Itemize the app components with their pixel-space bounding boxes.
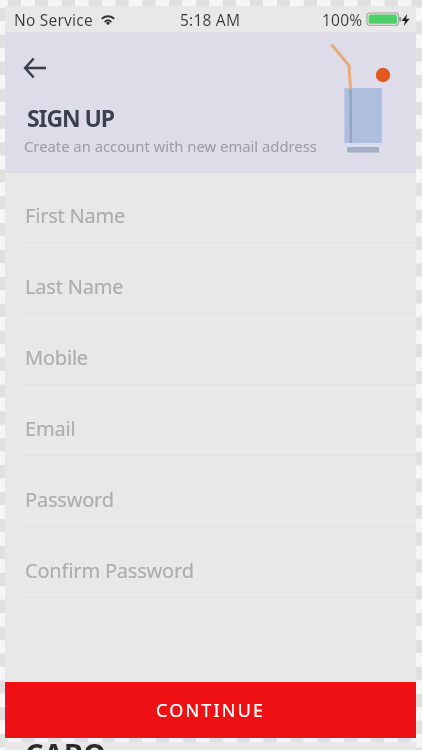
staticText: CONTINUE (156, 698, 266, 723)
button[interactable]: Back (13, 46, 57, 90)
button[interactable]: CONTINUE (5, 682, 416, 738)
staticText: First Name (25, 202, 126, 229)
staticText: Create an account with new email address (24, 136, 317, 156)
staticText: Last Name (25, 273, 124, 300)
button[interactable]: First Name (5, 173, 416, 243)
staticText: Mobile (25, 344, 88, 371)
button[interactable]: Last Name (5, 243, 416, 314)
staticText: 5:18 AM (180, 9, 241, 30)
button[interactable]: Email (5, 385, 416, 456)
staticText: No Service (14, 9, 93, 30)
staticText: Password (25, 486, 114, 513)
button[interactable]: Password (5, 456, 416, 527)
staticText: Confirm Password (25, 557, 194, 584)
staticText: 100% (322, 9, 363, 30)
button[interactable]: Mobile (5, 314, 416, 385)
staticText: SIGN UP (27, 102, 114, 133)
button[interactable]: Confirm Password (5, 527, 416, 598)
staticText: Email (25, 415, 76, 442)
staticText: CABO (25, 734, 106, 750)
